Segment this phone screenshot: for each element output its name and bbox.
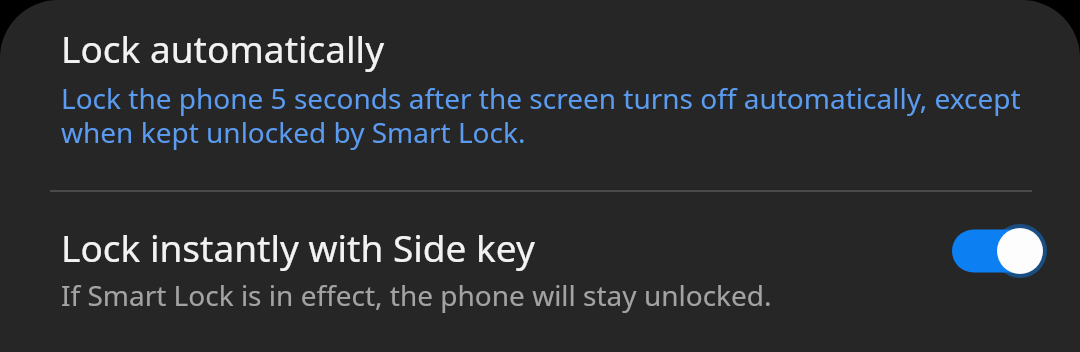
staticText: If Smart Lock is in effect, the phone wi… [61,276,772,314]
staticText: Lock the phone 5 seconds after the scree… [61,79,1032,151]
staticText: Lock automatically [61,23,385,73]
button[interactable]: Lock instantly with Side key [0,192,1080,352]
button[interactable]: Lock instantly with Side key toggle [942,192,1080,352]
staticText: Lock instantly with Side key [61,222,535,272]
button[interactable]: Lock automatically [0,0,1080,190]
